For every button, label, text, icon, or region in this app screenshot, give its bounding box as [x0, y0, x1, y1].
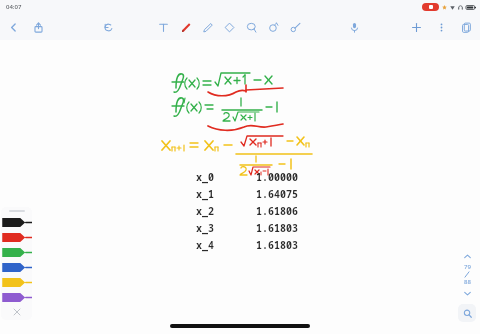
staticText: 79 — [464, 263, 471, 271]
staticText: 1.61806 — [256, 204, 298, 218]
button[interactable]: Pen colour — [1, 215, 32, 230]
staticText: 04:07 — [6, 3, 22, 11]
staticText: 1.00000 — [256, 170, 298, 184]
button[interactable]: Search — [458, 304, 476, 322]
button[interactable]: Eraser — [221, 19, 237, 35]
button[interactable]: Pen colour — [1, 245, 32, 260]
button[interactable]: Previous page — [460, 249, 474, 263]
button[interactable]: Shape — [265, 19, 281, 35]
button[interactable]: Back — [5, 19, 21, 35]
button[interactable]: Close palette — [12, 307, 22, 317]
button[interactable]: Undo — [100, 19, 116, 35]
staticText: 88 — [464, 278, 471, 286]
button[interactable]: Share — [30, 19, 46, 35]
staticText: x_3 — [196, 221, 256, 235]
staticText: x_2 — [196, 204, 256, 218]
button[interactable]: Highlighter — [199, 19, 215, 35]
button[interactable]: Pages — [458, 19, 474, 35]
button[interactable]: Text tool — [155, 19, 171, 35]
button[interactable]: Laser pointer — [287, 19, 303, 35]
button[interactable]: Pen colour — [1, 230, 32, 245]
staticText: x_1 — [196, 187, 256, 201]
button[interactable]: Lasso — [243, 19, 259, 35]
staticText: x_0 — [196, 170, 256, 184]
staticText: 1.61803 — [256, 238, 298, 252]
button[interactable]: Next page — [460, 286, 474, 300]
button[interactable]: Add — [408, 19, 424, 35]
button[interactable]: Pen colour — [1, 275, 32, 290]
button[interactable]: Pen colour — [1, 290, 32, 305]
button[interactable]: Record audio — [346, 19, 362, 35]
staticText: 1.61803 — [256, 221, 298, 235]
button[interactable]: Pen colour — [1, 260, 32, 275]
button[interactable]: Pen tool — [177, 19, 193, 35]
staticText: 1.64075 — [256, 187, 298, 201]
staticText: x_4 — [196, 238, 256, 252]
button[interactable]: More options — [433, 19, 449, 35]
